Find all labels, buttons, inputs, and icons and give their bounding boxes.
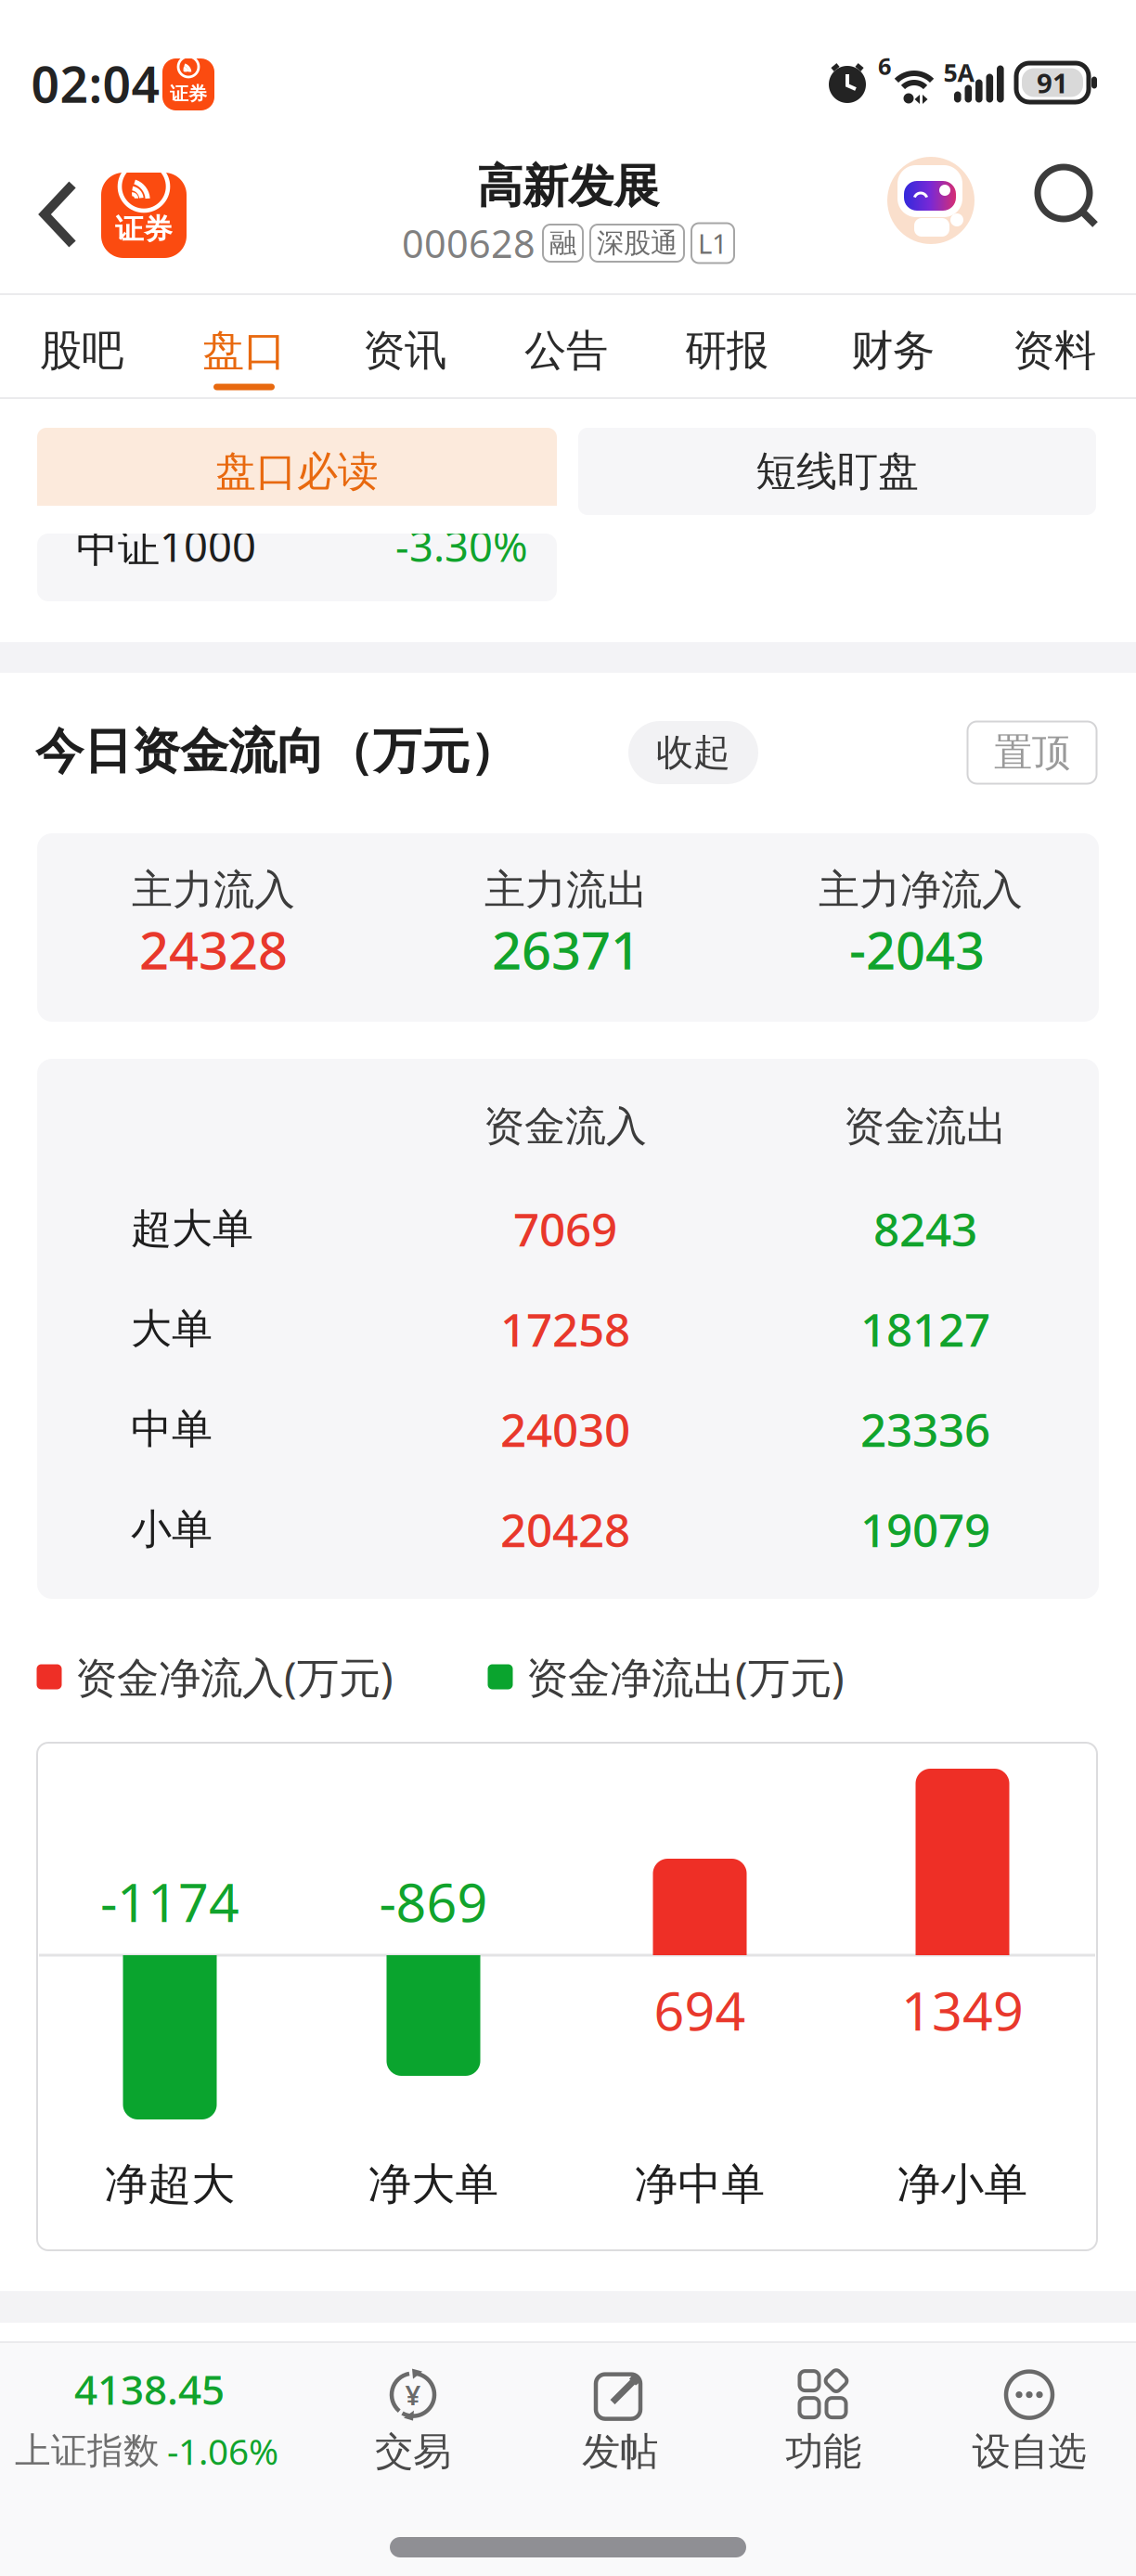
staticText: 功能 [785, 2428, 861, 2475]
staticText: 上证指数 [15, 2429, 160, 2473]
staticText: -1.06% [167, 2427, 278, 2475]
staticText: 短线盯盘 [755, 446, 919, 496]
button[interactable]: ¥ [375, 2369, 451, 2475]
staticText: 研报 [685, 325, 768, 377]
button[interactable]: Back [39, 180, 80, 249]
staticText: 19079 [860, 1499, 990, 1560]
button[interactable]: 财务 [851, 325, 935, 377]
staticText: 交易 [375, 2428, 451, 2475]
staticText: 收起 [656, 730, 730, 775]
staticText: 净大单 [368, 2158, 499, 2211]
staticText: 大单 [131, 1304, 213, 1354]
staticText: 资金净流出(万元) [526, 1649, 845, 1705]
staticText: 5A [943, 56, 974, 89]
button[interactable]: 盘口必读 [37, 428, 557, 515]
staticText: 20428 [500, 1499, 630, 1560]
staticText: L1 [698, 225, 728, 261]
button[interactable]: 股吧 [40, 325, 123, 377]
button[interactable]: 盘口 [202, 325, 286, 377]
button[interactable]: 公告 [524, 325, 608, 377]
staticText: 超大单 [131, 1204, 253, 1254]
staticText: 净小单 [897, 2158, 1028, 2211]
staticText: 中证1000 [76, 518, 256, 574]
button[interactable]: 助手 [887, 157, 975, 244]
staticText: 高新发展 [477, 158, 659, 215]
staticText: 置顶 [994, 729, 1070, 776]
staticText: 净中单 [634, 2158, 765, 2211]
staticText: 设自选 [972, 2428, 1086, 2475]
button[interactable]: 资料 [1013, 325, 1096, 377]
button[interactable]: 设自选 [972, 2369, 1086, 2475]
staticText: 深股通 [597, 226, 678, 260]
staticText: -869 [379, 1866, 488, 1937]
staticText: 24328 [139, 915, 288, 984]
button[interactable]: Search [1036, 165, 1099, 228]
button[interactable]: 置顶 [968, 721, 1097, 784]
staticText: 盘口 [202, 325, 286, 377]
staticText: 证券 [115, 212, 173, 247]
staticText: 主力流入 [132, 865, 295, 915]
staticText: 证券 [170, 82, 207, 105]
staticText: 融 [549, 226, 576, 260]
button[interactable]: 中证1000 [37, 534, 557, 601]
staticText: 7069 [513, 1198, 617, 1259]
staticText: 主力净流入 [819, 865, 1023, 915]
staticText: 公告 [524, 325, 608, 377]
staticText: 资金净流入(万元) [75, 1649, 394, 1705]
staticText: -3.30% [395, 518, 528, 574]
staticText: 资料 [1013, 325, 1096, 377]
staticText: 盘口必读 [215, 446, 379, 496]
button[interactable]: 收起 [628, 721, 758, 784]
staticText: 23336 [860, 1399, 990, 1459]
staticText: 股吧 [40, 325, 123, 377]
staticText: ¥ [405, 2377, 421, 2413]
staticText: 17258 [500, 1298, 630, 1359]
staticText: 1349 [901, 1975, 1024, 2045]
staticText: 中单 [131, 1404, 213, 1454]
button[interactable]: 研报 [685, 325, 768, 377]
staticText: 净超大 [104, 2158, 235, 2211]
staticText: 02:04 [31, 51, 160, 116]
staticText: 资讯 [363, 325, 446, 377]
staticText: -1174 [100, 1866, 239, 1937]
staticText: 4138.45 [74, 2362, 225, 2416]
button[interactable]: 证券 [101, 173, 187, 258]
button[interactable]: 资讯 [363, 325, 446, 377]
staticText: 000628 [402, 218, 536, 269]
staticText: 小单 [131, 1504, 213, 1554]
button[interactable]: 4138.45 [15, 2362, 284, 2475]
staticText: 资金流入 [484, 1101, 647, 1152]
staticText: 26371 [492, 915, 640, 984]
staticText: 18127 [860, 1298, 990, 1359]
staticText: -2043 [849, 915, 985, 984]
staticText: 694 [654, 1975, 746, 2045]
staticText: 发帖 [582, 2428, 658, 2475]
staticText: 主力流出 [484, 865, 648, 915]
staticText: 6 [878, 50, 891, 81]
staticText: 财务 [851, 325, 935, 377]
staticText: 8243 [873, 1198, 977, 1259]
staticText: 今日资金流向（万元） [35, 722, 518, 781]
button[interactable]: 短线盯盘 [578, 428, 1096, 515]
button[interactable]: 功能 [785, 2369, 861, 2475]
staticText: 91 [1037, 64, 1068, 101]
staticText: 资金流出 [844, 1101, 1007, 1152]
button[interactable]: 发帖 [582, 2369, 658, 2475]
staticText: 24030 [500, 1399, 630, 1459]
